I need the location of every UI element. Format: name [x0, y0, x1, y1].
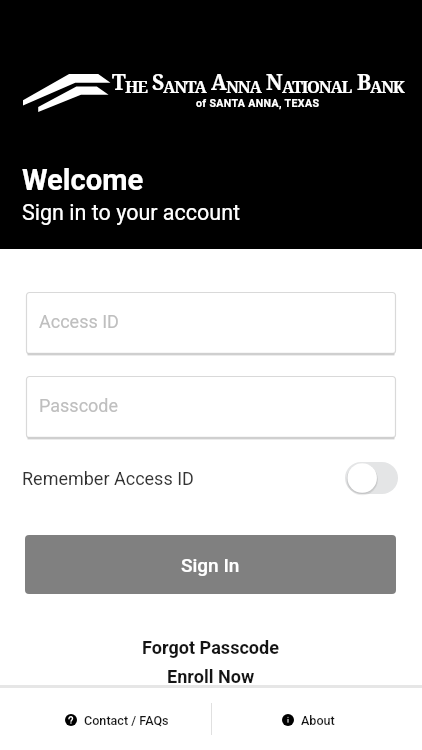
- staticText: Welcome: [22, 163, 144, 197]
- button[interactable]: Enroll Now: [0, 661, 422, 691]
- staticText: of SANTA ANNA, TEXAS: [196, 97, 320, 109]
- staticText: S: [152, 68, 163, 97]
- staticText: About: [301, 713, 335, 728]
- staticText: T: [112, 68, 125, 97]
- button[interactable]: Forgot Passcode: [0, 632, 422, 662]
- staticText: Remember Access ID: [22, 468, 194, 489]
- staticText: N: [266, 68, 282, 97]
- staticText: Contact / FAQs: [84, 713, 169, 728]
- staticText: Access ID: [39, 311, 119, 332]
- button[interactable]: Passcode: [26, 376, 396, 440]
- staticText: NNA: [226, 75, 261, 97]
- staticText: ANK: [370, 75, 404, 97]
- button[interactable]: About: [282, 696, 335, 744]
- staticText: ANTA: [163, 75, 206, 97]
- staticText: Sign in to your account: [22, 200, 241, 225]
- staticText: Enroll Now: [167, 666, 255, 687]
- button[interactable]: Contact / FAQs: [65, 696, 169, 744]
- staticText: Sign In: [181, 554, 240, 576]
- staticText: Passcode: [39, 395, 119, 416]
- button[interactable]: Sign In: [25, 535, 396, 594]
- staticText: B: [357, 68, 370, 97]
- staticText: ATIONAL: [282, 75, 352, 97]
- button[interactable]: Remember Access ID: [345, 462, 398, 494]
- button[interactable]: Access ID: [26, 292, 396, 356]
- staticText: Forgot Passcode: [142, 637, 280, 658]
- staticText: A: [211, 68, 226, 97]
- staticText: HE: [125, 75, 147, 97]
